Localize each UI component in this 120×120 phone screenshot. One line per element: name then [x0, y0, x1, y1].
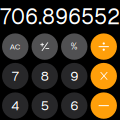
staticText: 7 [12, 67, 19, 85]
button[interactable]: Multiply [91, 63, 117, 89]
button[interactable]: 5 [32, 92, 58, 119]
button[interactable]: AC [2, 33, 28, 60]
staticText: 5 [41, 97, 49, 114]
staticText: 6 [70, 97, 78, 114]
button[interactable]: % [61, 33, 87, 60]
staticText: % [71, 41, 78, 52]
button[interactable]: 6 [61, 92, 87, 119]
button[interactable]: 8 [32, 63, 58, 89]
button[interactable]: 7 [2, 63, 28, 89]
staticText: 4 [11, 97, 19, 114]
button[interactable]: 9 [61, 63, 87, 89]
staticText: 9 [70, 67, 78, 85]
button[interactable]: Divide [91, 33, 117, 60]
staticText: 8 [41, 67, 49, 85]
button[interactable]: 4 [2, 92, 28, 119]
button[interactable]: Plus Minus [32, 33, 58, 60]
button[interactable]: Minus [91, 92, 117, 119]
staticText: AC [10, 41, 21, 52]
staticText: 706.896552 [0, 3, 120, 30]
